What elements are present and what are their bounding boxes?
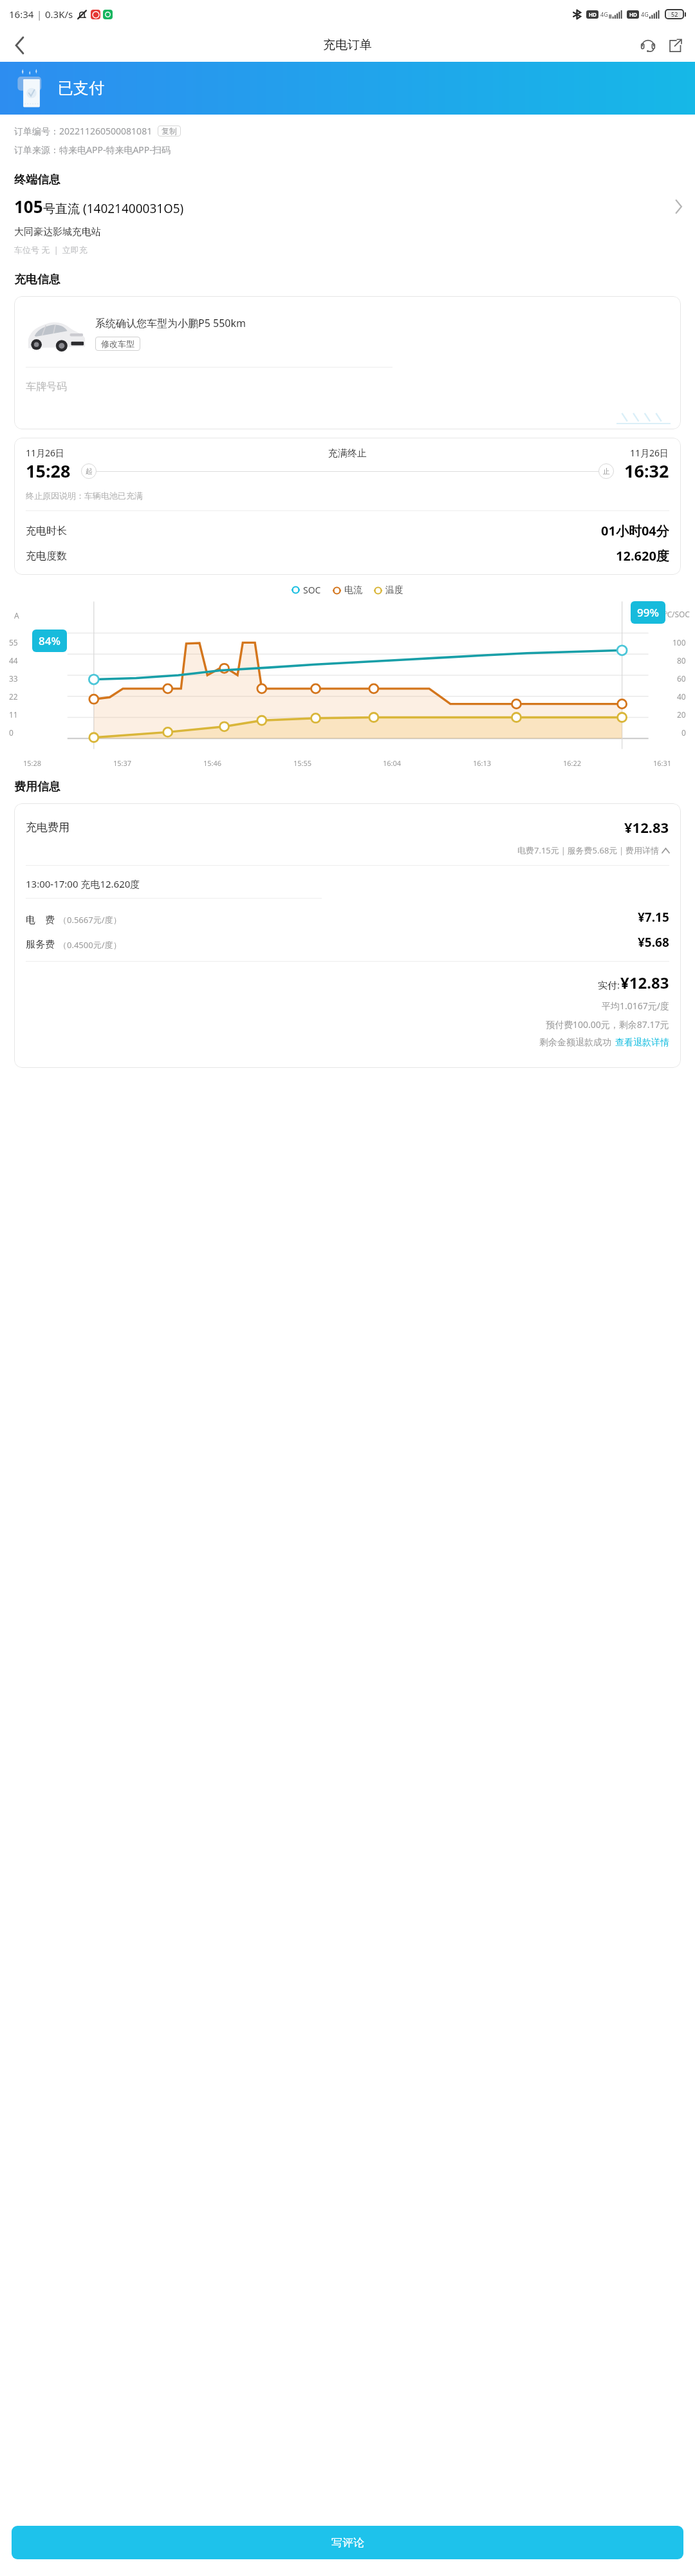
staticText: 100 [672, 637, 686, 648]
staticText: 查看退款详情 [615, 1037, 669, 1049]
staticText: 充电信息 [14, 272, 60, 287]
staticText: 16:13 [473, 758, 492, 768]
staticText: 车牌号码 [26, 380, 67, 393]
staticText: 平均1.0167元/度 [602, 1000, 669, 1012]
staticText: ¥7.15 [638, 909, 669, 926]
staticText: 起 [86, 467, 93, 476]
staticText: 105 [14, 195, 43, 218]
staticText: 4G [600, 10, 608, 18]
button[interactable]: 查看退款详情 [615, 1037, 669, 1049]
staticText: 16:31 [653, 758, 672, 768]
staticText: 13:00-17:00 充电12.620度 [26, 877, 140, 890]
staticText: 16:04 [383, 758, 402, 768]
staticText: 充满终止 [328, 447, 367, 460]
staticText: 电费7.15元｜服务费5.68元｜费用详情 [517, 845, 660, 856]
staticText: 55 [9, 637, 18, 648]
staticText: 充电时长 [26, 525, 67, 537]
staticText: ¥12.83 [620, 972, 669, 993]
staticText: 大同豪达影城充电站 [14, 226, 101, 238]
staticText: 12.620度 [616, 547, 669, 565]
button[interactable]: 系统确认您车型为小鹏P5 550km [14, 296, 681, 429]
staticText: 16:32 [624, 459, 669, 483]
button[interactable]: 复制 [158, 126, 181, 136]
staticText: 费用信息 [14, 779, 60, 794]
staticText: （0.5667元/度） [59, 914, 122, 926]
staticText: 11 [9, 709, 18, 720]
staticText: SOC [303, 584, 321, 596]
staticText: 4G [641, 10, 649, 18]
staticText: 20 [677, 709, 686, 720]
staticText: 84% [39, 633, 60, 648]
staticText: 0 [681, 727, 686, 738]
staticText: 0 [9, 727, 14, 738]
staticText: 终止原因说明：车辆电池已充满 [26, 490, 143, 501]
button[interactable]: 105 [0, 195, 695, 218]
staticText: 44 [9, 655, 18, 666]
staticText: 电 费 [26, 913, 55, 926]
staticText: | [34, 8, 45, 21]
staticText: 充电订单 [323, 37, 372, 53]
staticText: 22 [9, 691, 18, 702]
button[interactable]: 写评论 [12, 2526, 683, 2559]
staticText: 99% [637, 605, 659, 620]
staticText: 充电度数 [26, 550, 67, 563]
staticText: 预付费100.00元，剩余87.17元 [546, 1018, 669, 1031]
staticText: 40 [677, 691, 686, 702]
staticText: 15:55 [293, 758, 312, 768]
staticText: 33 [9, 673, 18, 684]
staticText: 温度 [385, 584, 403, 596]
button[interactable]: Share [662, 32, 689, 59]
staticText: 实付: [598, 978, 620, 991]
staticText: 52 [671, 10, 678, 18]
staticText: 15:28 [23, 758, 42, 768]
staticText: 修改车型 [101, 339, 134, 349]
staticText: 车位号 无 ｜ 立即充 [14, 244, 88, 256]
staticText: 已支付 [58, 79, 104, 98]
staticText: 15:28 [26, 459, 71, 483]
button[interactable]: Customer service [635, 32, 662, 59]
staticText: 系统确认您车型为小鹏P5 550km [95, 316, 246, 330]
staticText: 终端信息 [14, 173, 60, 187]
staticText: 0.3K/s [45, 8, 73, 21]
staticText: ℃/SOC [664, 609, 690, 619]
staticText: 15:46 [203, 758, 222, 768]
staticText: 服务费 [26, 938, 55, 951]
staticText: HD [629, 11, 637, 18]
staticText: ¥5.68 [638, 934, 669, 951]
staticText: 订单来源：特来电APP-特来电APP-扫码 [14, 144, 171, 156]
button[interactable]: Back [5, 31, 33, 59]
staticText: 订单编号：202211260500081081 [14, 125, 153, 137]
staticText: 16:34 [9, 8, 34, 21]
staticText: 充电费用 [26, 821, 69, 834]
staticText: ¥12.83 [624, 817, 669, 837]
staticText: 15:37 [113, 758, 132, 768]
staticText: A [14, 610, 19, 621]
button[interactable]: 修改车型 [95, 337, 140, 351]
staticText: （0.4500元/度） [59, 939, 122, 951]
staticText: 80 [677, 655, 686, 666]
staticText: 写评论 [331, 2536, 364, 2550]
staticText: HD [589, 11, 597, 18]
button[interactable]: 电费7.15元｜服务费5.68元｜费用详情 [26, 845, 669, 856]
staticText: 止 [603, 467, 610, 476]
staticText: 电流 [344, 584, 362, 596]
staticText: 11月26日 [630, 447, 669, 459]
staticText: 剩余金额退款成功 [539, 1037, 611, 1049]
staticText: 11月26日 [26, 447, 65, 459]
staticText: 60 [677, 673, 686, 684]
staticText: 01小时04分 [601, 522, 669, 539]
staticText: 号直流 (14021400031О5) [43, 200, 184, 217]
staticText: 复制 [162, 126, 177, 136]
staticText: 16:22 [563, 758, 582, 768]
